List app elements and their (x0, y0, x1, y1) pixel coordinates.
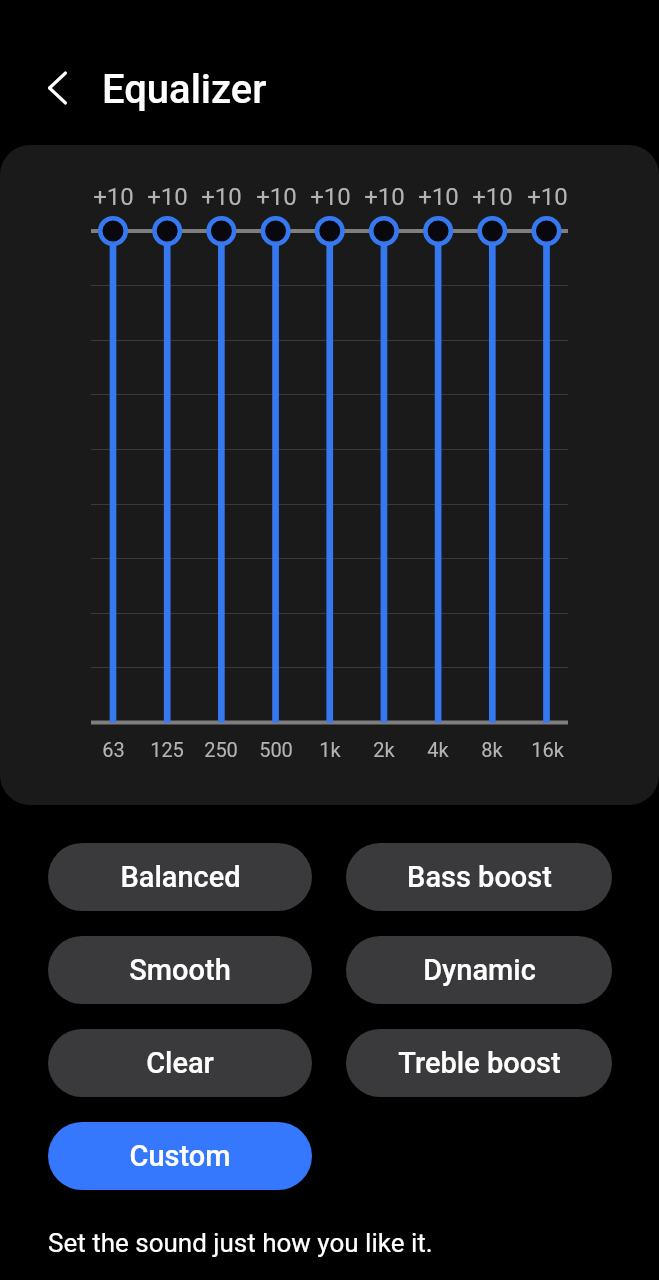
staticText: Custom (129, 1139, 231, 1173)
staticText: +10 (256, 183, 297, 211)
button[interactable]: 500 Hz band, +10 (248, 215, 302, 739)
button[interactable]: Balanced (48, 843, 312, 911)
button[interactable]: Clear (48, 1029, 312, 1097)
button[interactable]: 125 Hz band, +10 (140, 215, 194, 739)
button[interactable]: 16k Hz band, +10 (519, 215, 573, 739)
button[interactable]: 250 Hz band, +10 (194, 215, 248, 739)
button[interactable]: 63 Hz band, +10 (86, 215, 140, 739)
staticText: +10 (527, 183, 568, 211)
staticText: 2k (373, 738, 395, 761)
staticText: 8k (481, 738, 503, 761)
staticText: 16k (531, 738, 564, 761)
button[interactable]: Custom (48, 1122, 312, 1190)
staticText: +10 (364, 183, 405, 211)
staticText: 250 (204, 738, 238, 761)
staticText: Equalizer (102, 66, 267, 113)
staticText: 125 (150, 738, 184, 761)
staticText: +10 (201, 183, 242, 211)
staticText: Bass boost (407, 860, 552, 894)
staticText: 1k (319, 738, 341, 761)
staticText: +10 (472, 183, 513, 211)
button[interactable]: Smooth (48, 936, 312, 1004)
staticText: +10 (147, 183, 188, 211)
staticText: Clear (146, 1046, 214, 1080)
button[interactable]: Bass boost (346, 843, 612, 911)
staticText: Balanced (120, 860, 241, 894)
button[interactable]: 2k Hz band, +10 (357, 215, 411, 739)
button[interactable]: Navigate up (33, 64, 81, 112)
staticText: 63 (102, 738, 125, 761)
staticText: Smooth (129, 953, 231, 987)
button[interactable]: 8k Hz band, +10 (465, 215, 519, 739)
button[interactable]: Treble boost (346, 1029, 612, 1097)
button[interactable]: 1k Hz band, +10 (303, 215, 357, 739)
staticText: Dynamic (423, 953, 536, 987)
staticText: +10 (418, 183, 459, 211)
staticText: Treble boost (398, 1046, 561, 1080)
button[interactable]: 4k Hz band, +10 (411, 215, 465, 739)
staticText: 500 (259, 738, 293, 761)
staticText: 4k (427, 738, 449, 761)
staticText: +10 (310, 183, 351, 211)
button[interactable]: Dynamic (346, 936, 612, 1004)
staticText: Set the sound just how you like it. (48, 1228, 433, 1258)
staticText: +10 (93, 183, 134, 211)
